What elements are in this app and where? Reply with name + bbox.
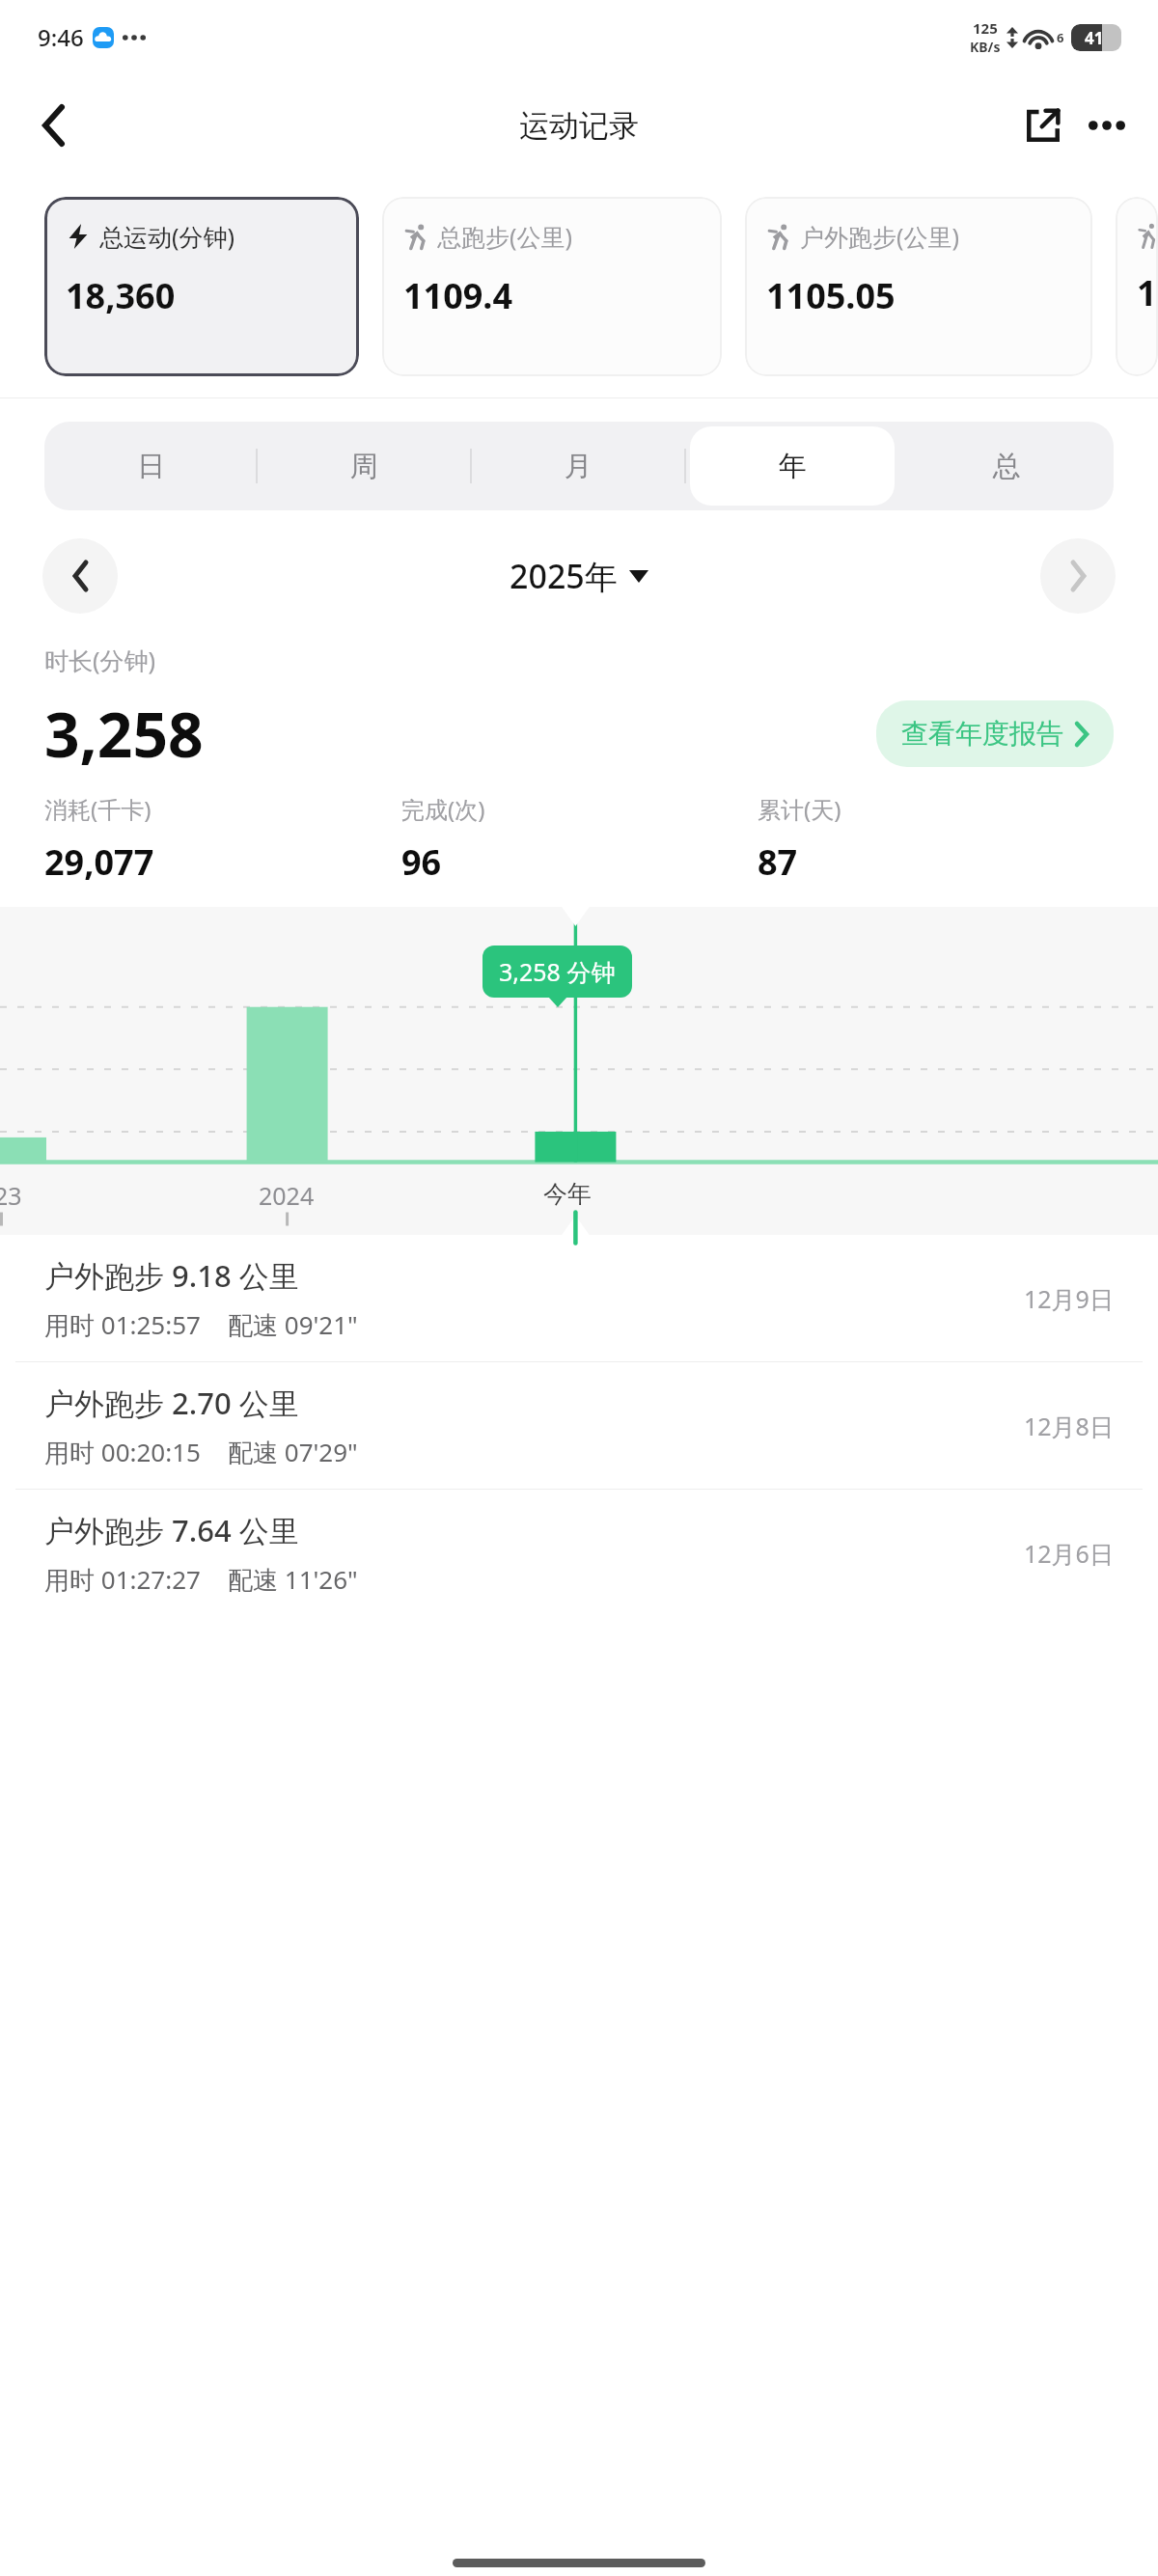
staticText: 累计(天) xyxy=(758,793,841,825)
staticText: 6 xyxy=(1057,29,1064,46)
button[interactable]: More options xyxy=(1079,97,1135,153)
staticText: 12月8日 xyxy=(1024,1410,1114,1442)
staticText: 18,360 xyxy=(66,272,176,319)
staticText: 2024 xyxy=(259,1179,315,1212)
staticText: 用时 00:20:15 xyxy=(44,1435,201,1469)
button[interactable]: 月 xyxy=(476,426,680,506)
staticText: 23 xyxy=(0,1179,22,1212)
staticText: KB/s xyxy=(970,38,1001,56)
staticText: 户外跑步 2.70 公里 xyxy=(44,1383,299,1423)
button[interactable]: 总运动(分钟) xyxy=(44,197,359,376)
staticText: 户外跑步 9.18 公里 xyxy=(44,1255,299,1296)
button[interactable]: 周 xyxy=(262,426,466,506)
staticText: 1105.05 xyxy=(766,272,896,319)
staticText: 9:46 xyxy=(38,21,84,53)
staticText: 12月9日 xyxy=(1024,1282,1114,1315)
button[interactable]: 总跑步(公里) xyxy=(382,197,722,376)
staticText: 时长(分钟) xyxy=(44,644,156,676)
staticText: 户外跑步 7.64 公里 xyxy=(44,1510,299,1550)
button[interactable]: 年 xyxy=(690,426,895,506)
staticText: 2025年 xyxy=(510,554,618,598)
button[interactable]: 户外跑步(公里) xyxy=(745,197,1092,376)
staticText: 总 xyxy=(993,449,1021,484)
staticText: 总运动(分钟) xyxy=(99,220,235,253)
button[interactable]: 日 xyxy=(49,426,253,506)
staticText: 3,258 xyxy=(44,692,204,776)
staticText: 29,077 xyxy=(44,838,154,886)
staticText: 125 xyxy=(973,18,998,38)
staticText: 1, xyxy=(1137,269,1158,316)
button[interactable]: Back xyxy=(25,97,81,153)
button[interactable]: Next year xyxy=(1040,538,1116,614)
button[interactable]: 户外跑步 7.64 公里 xyxy=(0,1490,1158,1616)
staticText: 87 xyxy=(758,838,798,886)
staticText: 配速 09'21" xyxy=(228,1307,358,1342)
button[interactable]: 户外跑步 9.18 公里 xyxy=(0,1235,1158,1361)
staticText: 总跑步(公里) xyxy=(437,220,573,253)
staticText: 完成(次) xyxy=(401,793,485,825)
staticText: 配速 07'29" xyxy=(228,1435,358,1469)
staticText: 周 xyxy=(350,449,378,484)
staticText: 41 xyxy=(1085,27,1104,49)
staticText: 96 xyxy=(401,838,442,886)
staticText: 12月6日 xyxy=(1024,1537,1114,1570)
staticText: 消耗(千卡) xyxy=(44,793,152,825)
staticText: 年 xyxy=(779,449,807,484)
staticText: 查看年度报告 xyxy=(901,717,1063,751)
button[interactable]: Previous year xyxy=(42,538,118,614)
staticText: 日 xyxy=(137,449,165,484)
button[interactable]: Share xyxy=(1015,97,1071,153)
staticText: 运动记录 xyxy=(519,107,639,145)
staticText: 户外跑步(公里) xyxy=(800,220,960,253)
staticText: 用时 01:27:27 xyxy=(44,1562,201,1597)
button[interactable]: 步 xyxy=(1116,197,1158,376)
button[interactable]: 2025年 xyxy=(510,554,648,598)
staticText: 配速 11'26" xyxy=(228,1562,358,1597)
button[interactable]: 总 xyxy=(904,426,1109,506)
staticText: 月 xyxy=(565,449,593,484)
staticText: 今年 xyxy=(543,1179,592,1209)
staticText: 1109.4 xyxy=(403,272,513,319)
staticText: 3,258 分钟 xyxy=(499,955,616,988)
button[interactable]: 户外跑步 2.70 公里 xyxy=(0,1362,1158,1489)
staticText: 用时 01:25:57 xyxy=(44,1307,201,1342)
button[interactable]: 查看年度报告 xyxy=(876,700,1114,767)
